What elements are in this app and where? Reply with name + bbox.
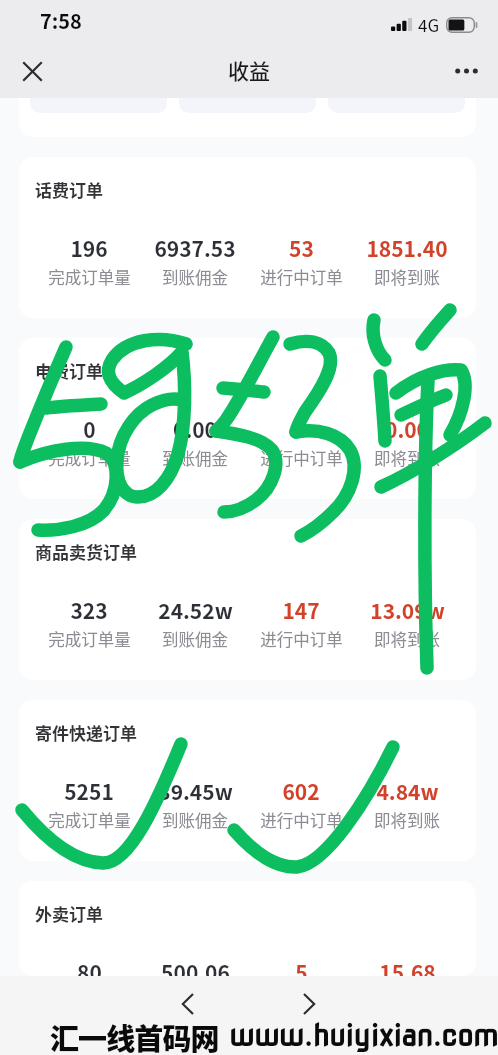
staticText: 到账佣金	[162, 627, 228, 651]
staticText: 即将到账	[374, 265, 440, 289]
staticText: 39.45w	[158, 776, 233, 806]
button[interactable]: 话费订单	[19, 157, 476, 318]
staticText: 0	[295, 414, 308, 444]
staticText: 完成订单量	[48, 265, 131, 289]
staticText: 商品卖货订单	[35, 539, 137, 564]
button[interactable]: Forward	[289, 984, 329, 1024]
staticText: 147	[282, 595, 320, 625]
button[interactable]: 商品卖货订单	[19, 519, 476, 680]
button[interactable]: Back	[167, 984, 207, 1024]
button[interactable]: 电费订单	[19, 338, 476, 499]
staticText: 即将到账	[374, 446, 440, 470]
staticText: 进行中订单	[260, 265, 343, 289]
staticText: 收益	[228, 55, 270, 85]
staticText: 0.00	[173, 414, 217, 444]
staticText: 进行中订单	[260, 808, 343, 832]
staticText: 寄件快递订单	[35, 720, 137, 745]
staticText: 外卖订单	[35, 901, 103, 926]
button[interactable]: More options	[446, 51, 486, 91]
staticText: 即将到账	[374, 627, 440, 651]
staticText: 4.84w	[376, 776, 439, 806]
staticText: 完成订单量	[48, 446, 131, 470]
button[interactable]: Close	[13, 52, 51, 90]
staticText: www.huiyixian.com	[229, 1018, 498, 1053]
staticText: 323	[70, 595, 108, 625]
staticText: 6937.53	[154, 233, 236, 263]
staticText: 500.06	[161, 957, 230, 976]
staticText: 0	[83, 414, 96, 444]
staticText: 13.09w	[370, 595, 445, 625]
button[interactable]: 寄件快递订单	[19, 700, 476, 861]
staticText: 4G	[418, 12, 440, 37]
staticText: 电费订单	[35, 358, 103, 383]
button[interactable]: 外卖订单	[19, 881, 476, 976]
staticText: 24.52w	[158, 595, 233, 625]
staticText: 到账佣金	[162, 446, 228, 470]
staticText: 0.00	[385, 414, 429, 444]
staticText: 15.68	[379, 957, 436, 976]
staticText: 完成订单量	[48, 808, 131, 832]
staticText: 80	[77, 957, 102, 976]
staticText: 完成订单量	[48, 627, 131, 651]
staticText: 进行中订单	[260, 627, 343, 651]
staticText: 到账佣金	[162, 808, 228, 832]
staticText: 汇一线首码网	[50, 1016, 219, 1055]
staticText: 602	[282, 776, 320, 806]
staticText: 53	[289, 233, 314, 263]
staticText: 5	[295, 957, 308, 976]
staticText: 1851.40	[366, 233, 448, 263]
staticText: 196	[70, 233, 108, 263]
staticText: 7:58	[40, 6, 82, 35]
staticText: 话费订单	[35, 177, 103, 202]
staticText: 进行中订单	[260, 446, 343, 470]
staticText: 到账佣金	[162, 265, 228, 289]
staticText: 5251	[64, 776, 114, 806]
staticText: 即将到账	[374, 808, 440, 832]
